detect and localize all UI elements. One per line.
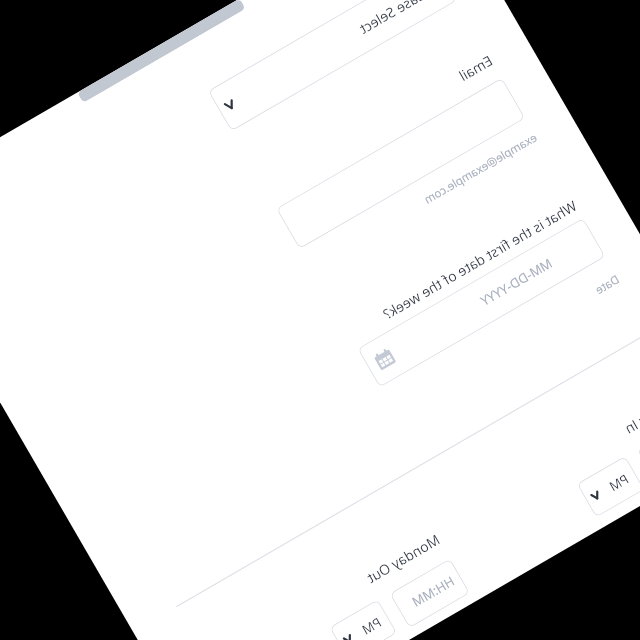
button[interactable]: PM bbox=[329, 599, 397, 640]
staticText: Email bbox=[455, 51, 496, 85]
staticText: PM bbox=[358, 613, 384, 639]
button[interactable]: MM-DD-YYYY bbox=[357, 218, 606, 387]
button[interactable]: Please Select bbox=[208, 0, 457, 131]
button[interactable]: HH:MM bbox=[389, 558, 470, 628]
button[interactable]: PM bbox=[577, 456, 640, 518]
staticText: Monday In bbox=[620, 386, 640, 438]
staticText: Please Select bbox=[355, 0, 438, 38]
button[interactable]: HH:MM bbox=[637, 415, 640, 485]
staticText: HH:MM bbox=[408, 572, 458, 611]
staticText: What is the first date of the week? bbox=[379, 196, 580, 323]
staticText: Date bbox=[592, 271, 622, 298]
other: Select AM or PM bbox=[342, 634, 354, 640]
staticText: MM-DD-YYYY bbox=[477, 254, 555, 310]
staticText: PM bbox=[605, 470, 632, 495]
other: Open dropdown bbox=[223, 99, 237, 111]
other: Pick date bbox=[373, 347, 396, 370]
staticText: example@example.com bbox=[420, 129, 540, 208]
staticText: Monday Out bbox=[362, 530, 443, 587]
other: Select AM or PM bbox=[590, 490, 602, 502]
button[interactable] bbox=[276, 78, 525, 249]
